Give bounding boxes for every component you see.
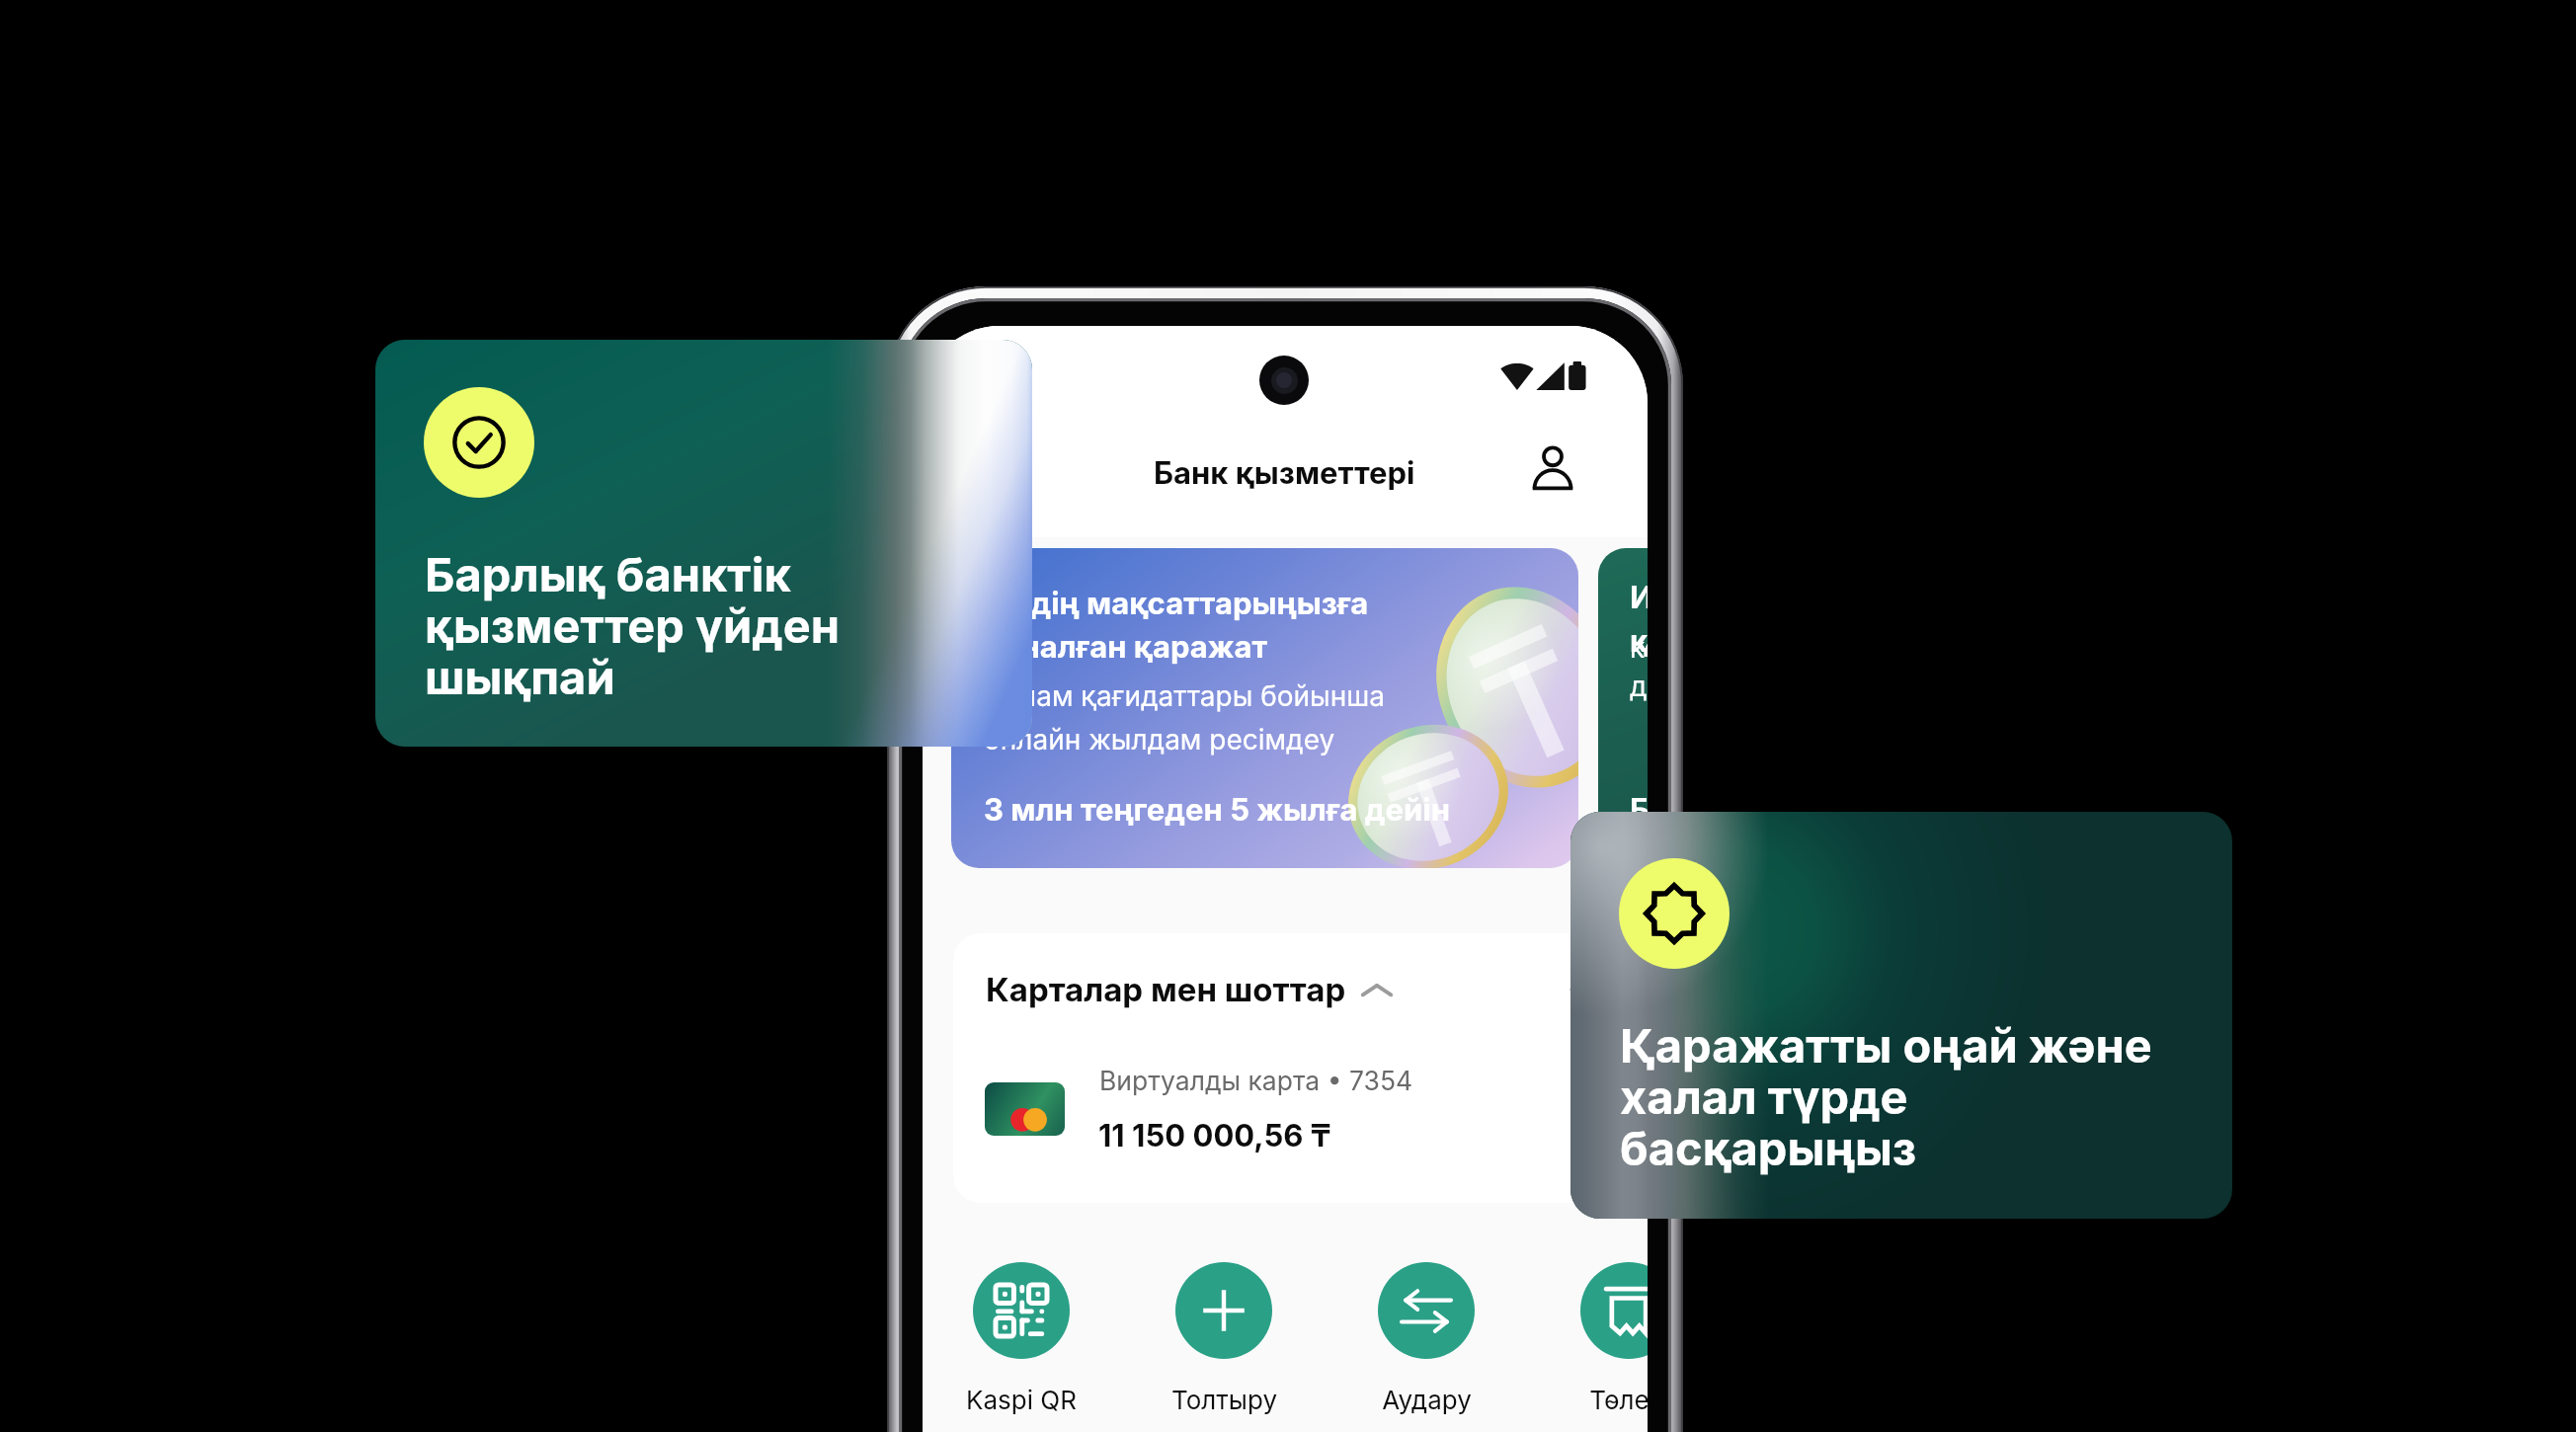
button[interactable]: Kaspi QR [928,1262,1114,1415]
staticText: 11 150 000,56 ₸ [1098,1117,1331,1154]
button[interactable]: Барлық банктік қызметтер үйден шықпай [375,340,1032,747]
button[interactable]: Аудару [1333,1262,1519,1415]
staticText: Сіздің мақсаттарыңызға арналған қаражат [984,585,1369,666]
button[interactable]: Толтыру [1131,1262,1317,1415]
staticText: 3 млн теңгеден 5 жылға дейін [984,791,1450,829]
staticText: Барлық банктік қызметтер үйден шықпай [425,546,840,705]
staticText: Төлем [1589,1385,1648,1415]
staticText: Виртуалды карта • 7354 [1099,1065,1413,1096]
staticText: кепілсіз [1630,631,1648,665]
staticText: Ислам қағидаттары бойынша онлайн жылдам … [984,679,1386,756]
staticText: даярлаймыз [1630,670,1648,703]
button[interactable]: Profile [1530,445,1575,491]
staticText: Исламдық қаржы [1630,579,1648,660]
staticText: Қаражатты оңай және халал түрде басқарың… [1620,1017,2152,1176]
staticText: Толтыру [1171,1385,1277,1415]
button[interactable]: Қаражатты оңай және халал түрде басқарың… [1570,812,2232,1219]
staticText: Карталар мен шоттар [986,970,1346,1009]
button[interactable]: Төлем [1536,1262,1648,1415]
button[interactable]: Карталар мен шоттар [986,970,1394,1009]
staticText: Kaspi QR [966,1385,1077,1415]
button[interactable]: Add card [1567,971,1604,1008]
button[interactable]: Исламдық қаржы [1598,548,1648,868]
staticText: Банк қызметтері [1154,454,1415,492]
staticText: Бастау [1630,791,1648,829]
staticText: Аудару [1382,1385,1472,1415]
button[interactable]: Сіздің мақсаттарыңызға арналған қаражат [951,548,1578,868]
